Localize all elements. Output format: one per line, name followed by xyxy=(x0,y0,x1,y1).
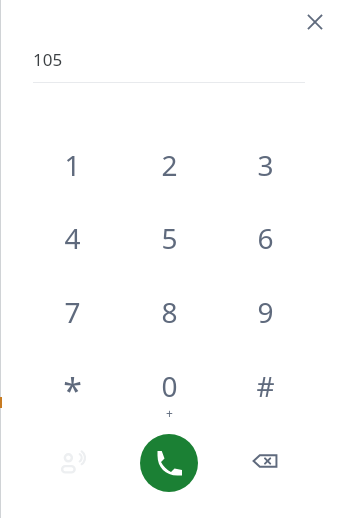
button[interactable]: 4 xyxy=(36,207,108,269)
button[interactable]: 6 xyxy=(229,207,301,269)
staticText: 105 xyxy=(33,48,63,71)
button[interactable]: 5 xyxy=(133,207,205,269)
staticText: 3 xyxy=(257,146,274,184)
staticText: 1 xyxy=(64,146,81,184)
staticText: 5 xyxy=(161,219,178,257)
button[interactable]: 7 xyxy=(36,281,108,343)
staticText: # xyxy=(256,367,275,405)
button[interactable]: Close xyxy=(295,2,335,42)
button[interactable]: 0 xyxy=(133,355,205,417)
button[interactable]: # xyxy=(229,355,301,417)
button[interactable]: 9 xyxy=(229,281,301,343)
button[interactable]: 3 xyxy=(229,134,301,196)
staticText: 7 xyxy=(64,293,81,331)
button[interactable]: 8 xyxy=(133,281,205,343)
staticText: 9 xyxy=(257,293,274,331)
button[interactable]: Voice call options xyxy=(48,439,96,487)
staticText: 2 xyxy=(161,146,178,184)
button[interactable]: Call xyxy=(140,434,198,492)
staticText: + xyxy=(166,405,173,417)
staticText: 0 xyxy=(161,367,178,405)
button[interactable]: 105 xyxy=(33,44,305,74)
button[interactable]: * xyxy=(36,355,108,417)
button[interactable]: Backspace xyxy=(241,437,289,485)
button[interactable]: 2 xyxy=(133,134,205,196)
button[interactable]: 1 xyxy=(36,134,108,196)
staticText: 6 xyxy=(257,219,274,257)
staticText: 8 xyxy=(161,293,178,331)
staticText: * xyxy=(63,367,82,413)
staticText: 4 xyxy=(64,219,81,257)
